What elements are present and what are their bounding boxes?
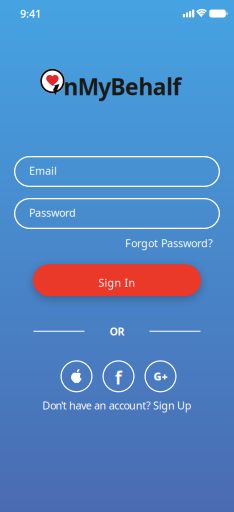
staticText: nMyBehalf <box>63 71 182 101</box>
staticText: Forgot Password? <box>125 236 213 250</box>
staticText: Password <box>29 205 76 220</box>
button[interactable]: Sign in with Facebook <box>102 360 134 392</box>
staticText: f <box>115 366 122 389</box>
button[interactable]: Forgot Password? <box>125 236 213 250</box>
staticText: Don't have an account? Sign Up <box>42 398 192 412</box>
button[interactable]: Sign in with Google <box>144 360 176 392</box>
staticText: G+ <box>153 369 167 383</box>
staticText: OR <box>109 324 124 338</box>
staticText: Sign In <box>98 276 135 290</box>
button[interactable]: Password <box>14 198 220 229</box>
staticText: Email <box>29 163 57 178</box>
button[interactable]: Don't have an account? Sign Up <box>42 398 192 412</box>
button[interactable]: Sign in with Apple <box>60 360 92 392</box>
staticText: 9:41 <box>20 6 41 21</box>
button[interactable]: Sign In <box>33 264 201 296</box>
button[interactable]: Email <box>14 156 220 187</box>
